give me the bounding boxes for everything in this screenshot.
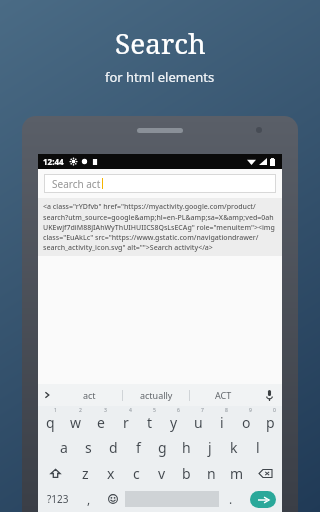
staticText: Search act [52,177,101,191]
staticText: w [70,413,82,432]
staticText: 9 [249,407,252,414]
button[interactable]: <a class="rYDfvb" href="https://myactivi… [38,198,282,256]
button[interactable]: 2 [63,406,88,434]
button[interactable]: a [51,434,76,460]
staticText: k [230,438,238,457]
staticText: ?123 [47,492,69,506]
button[interactable]: l [246,434,270,460]
staticText: 0 [273,407,276,414]
button[interactable]: k [222,434,246,460]
staticText: h [182,438,191,457]
staticText: 12:44 [43,156,64,167]
staticText: u [194,413,203,432]
staticText: l [256,438,260,457]
button[interactable]: 8 [210,406,234,434]
button[interactable]: s [76,434,101,460]
button[interactable]: Voice input [256,384,282,406]
button[interactable]: Backspace [249,460,282,486]
staticText: x [107,464,115,483]
staticText: . [229,491,233,507]
staticText: ACT [215,389,232,401]
staticText: d [109,438,118,457]
staticText: 2 [79,407,82,414]
staticText: c [133,464,140,483]
staticText: 8 [225,407,228,414]
staticText: 6 [177,407,180,414]
button[interactable]: More suggestions [38,384,56,406]
staticText: 7 [201,407,204,414]
button[interactable]: c [124,460,149,486]
button[interactable]: 4 [113,406,138,434]
button[interactable]: Enter [250,491,276,508]
staticText: for html elements [105,68,215,86]
staticText: 4 [129,407,132,414]
staticText: z [82,464,89,483]
staticText: t [147,413,153,432]
button[interactable]: 1 [38,406,63,434]
button[interactable]: h [174,434,198,460]
button[interactable]: n [199,460,224,486]
button[interactable]: g [150,434,174,460]
staticText: , [87,491,91,507]
staticText: y [170,413,178,432]
staticText: 5 [153,407,156,414]
staticText: g [158,438,167,457]
button[interactable]: Search act [44,174,276,193]
button[interactable]: 0 [258,406,282,434]
button[interactable]: actually [123,384,189,406]
staticText: s [85,438,92,457]
staticText: v [158,464,166,483]
staticText: f [136,438,141,457]
button[interactable]: Emoji [101,486,125,512]
button[interactable]: 7 [186,406,210,434]
staticText: o [242,413,251,432]
button[interactable]: ACT [190,384,256,406]
staticText: actually [140,389,173,401]
button[interactable]: 3 [88,406,113,434]
button[interactable]: v [149,460,174,486]
button[interactable]: ?123 [38,486,77,512]
staticText: <a class="rYDfvb" href="https://myactivi… [43,202,277,252]
button[interactable]: 5 [138,406,162,434]
staticText: m [230,464,244,483]
staticText: b [182,464,191,483]
button[interactable]: x [98,460,124,486]
button[interactable]: . [219,486,243,512]
staticText: e [97,413,105,432]
button[interactable]: Shift [38,460,72,486]
button[interactable]: 9 [234,406,258,434]
button[interactable]: act [56,384,122,406]
staticText: i [220,413,224,432]
staticText: a [60,438,68,457]
staticText: q [46,413,55,432]
staticText: p [266,413,275,432]
staticText: n [207,464,216,483]
staticText: r [123,413,129,432]
button[interactable]: , [77,486,101,512]
button[interactable]: m [224,460,249,486]
button[interactable]: j [198,434,222,460]
button[interactable]: b [174,460,199,486]
staticText: Search [115,24,206,62]
button[interactable]: z [72,460,98,486]
staticText: 3 [104,407,107,414]
button[interactable]: f [126,434,150,460]
staticText: 1 [54,407,57,414]
button[interactable]: d [101,434,126,460]
button[interactable]: 6 [162,406,186,434]
staticText: j [208,438,212,457]
staticText: act [83,389,96,401]
